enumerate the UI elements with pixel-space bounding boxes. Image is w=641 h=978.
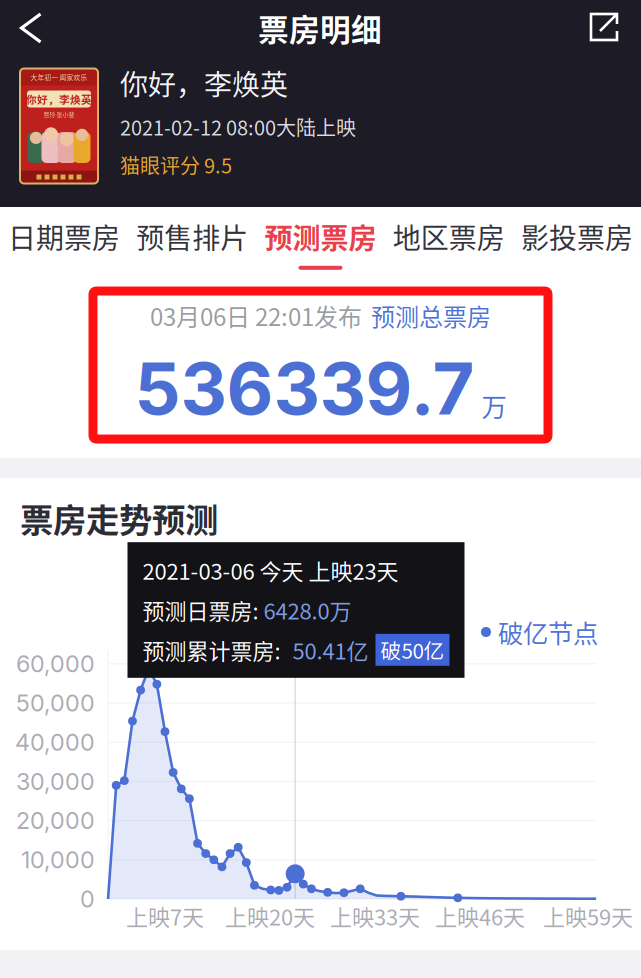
staticText: 影投票房 [521,216,633,257]
staticText: 你好，李焕英 [26,91,92,107]
button[interactable]: 预测票房 [256,208,385,278]
button[interactable]: Back [6,4,50,52]
staticText: 50.41亿 [292,634,368,666]
staticText: 20,000 [16,806,95,835]
staticText: 猫眼评分 9.5 [120,150,232,179]
staticText: 预测日票房: [142,594,263,626]
staticText: 预测累计票房: [142,634,285,666]
staticText: 上映33天 [330,900,420,932]
staticText: 536339.7 [134,345,474,432]
staticText: 30,000 [16,767,95,795]
staticText: 上映7天 [126,900,204,932]
button[interactable]: 影投票房 [513,208,641,278]
staticText: 票房明细 [258,6,382,50]
button[interactable]: 预售排片 [128,208,256,278]
button[interactable]: 地区票房 [385,208,513,278]
staticText: 地区票房 [393,216,505,257]
staticText: 破亿节点 [498,614,598,650]
staticText: 预测票房 [264,216,376,257]
staticText: 10,000 [21,846,95,874]
staticText: 破50亿 [380,635,444,665]
staticText: 0 [80,885,95,913]
staticText: 上映59天 [543,900,633,932]
button[interactable]: 日期票房 [0,208,128,278]
staticText: 日期票房 [8,216,120,257]
staticText: 大年初一 阖家欢乐 [30,72,87,82]
staticText: 预售排片 [136,216,248,257]
staticText: 2021-02-12 08:00大陆上映 [120,112,356,141]
staticText: 贾玲 张小斐 [43,110,74,119]
button[interactable]: Share [582,4,626,50]
staticText: 60,000 [16,650,95,678]
staticText: 上映46天 [435,900,525,932]
staticText: 万 [481,387,506,424]
staticText: 2021-03-06 今天 上映23天 [142,554,398,586]
staticText: 票房走势预测 [20,494,218,542]
staticText: 预测总票房 [371,298,491,333]
staticText: 03月06日 22:01发布 [150,298,362,333]
staticText: 50,000 [16,689,95,717]
staticText: 你好，李焕英 [120,63,288,103]
staticText: 上映20天 [225,900,315,932]
staticText: 40,000 [15,728,95,756]
staticText: 6428.0万 [263,594,351,626]
